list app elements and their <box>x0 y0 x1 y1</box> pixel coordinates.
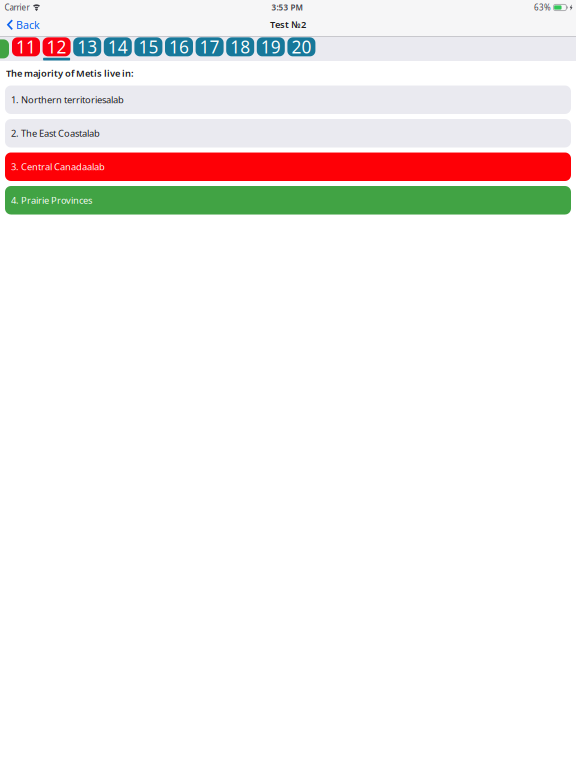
staticText: The majority of Metis live in: <box>6 67 134 79</box>
staticText: 4. Prairie Provinces <box>11 194 92 206</box>
button[interactable]: 13 <box>73 37 101 60</box>
button[interactable]: 17 <box>196 37 224 60</box>
staticText: 63% <box>534 2 551 13</box>
button[interactable]: 14 <box>104 37 132 60</box>
button[interactable]: 3. Central Canadaalab <box>5 152 571 181</box>
button[interactable]: 20 <box>287 37 315 60</box>
staticText: 3. Central Canadaalab <box>11 161 105 173</box>
staticText: 14 <box>108 35 128 58</box>
staticText: 11 <box>16 35 36 58</box>
staticText: 2. The East Coastalab <box>11 127 100 139</box>
staticText: 19 <box>261 35 281 58</box>
button[interactable]: Back <box>0 15 48 36</box>
button[interactable]: 2. The East Coastalab <box>5 119 571 147</box>
staticText: Carrier <box>4 2 29 13</box>
button[interactable]: 11 <box>12 37 40 60</box>
staticText: 15 <box>138 35 158 58</box>
staticText: 18 <box>230 35 250 58</box>
staticText: 16 <box>169 35 189 58</box>
staticText: 1. Northern territoriesalab <box>11 94 124 106</box>
button[interactable]: 18 <box>226 37 254 60</box>
staticText: 3:53 PM <box>272 2 303 13</box>
button[interactable]: 1. Northern territoriesalab <box>5 85 571 114</box>
button[interactable]: 15 <box>134 37 162 60</box>
button[interactable]: 12 <box>43 37 71 60</box>
button[interactable]: 16 <box>165 37 193 60</box>
staticText: 13 <box>77 35 97 58</box>
staticText: 17 <box>200 35 220 58</box>
button[interactable]: 19 <box>257 37 285 60</box>
button[interactable]: 4. Prairie Provinces <box>5 186 571 214</box>
staticText: 12 <box>47 35 67 58</box>
staticText: Test №2 <box>270 18 306 31</box>
staticText: Back <box>16 18 40 32</box>
staticText: 20 <box>291 35 311 58</box>
